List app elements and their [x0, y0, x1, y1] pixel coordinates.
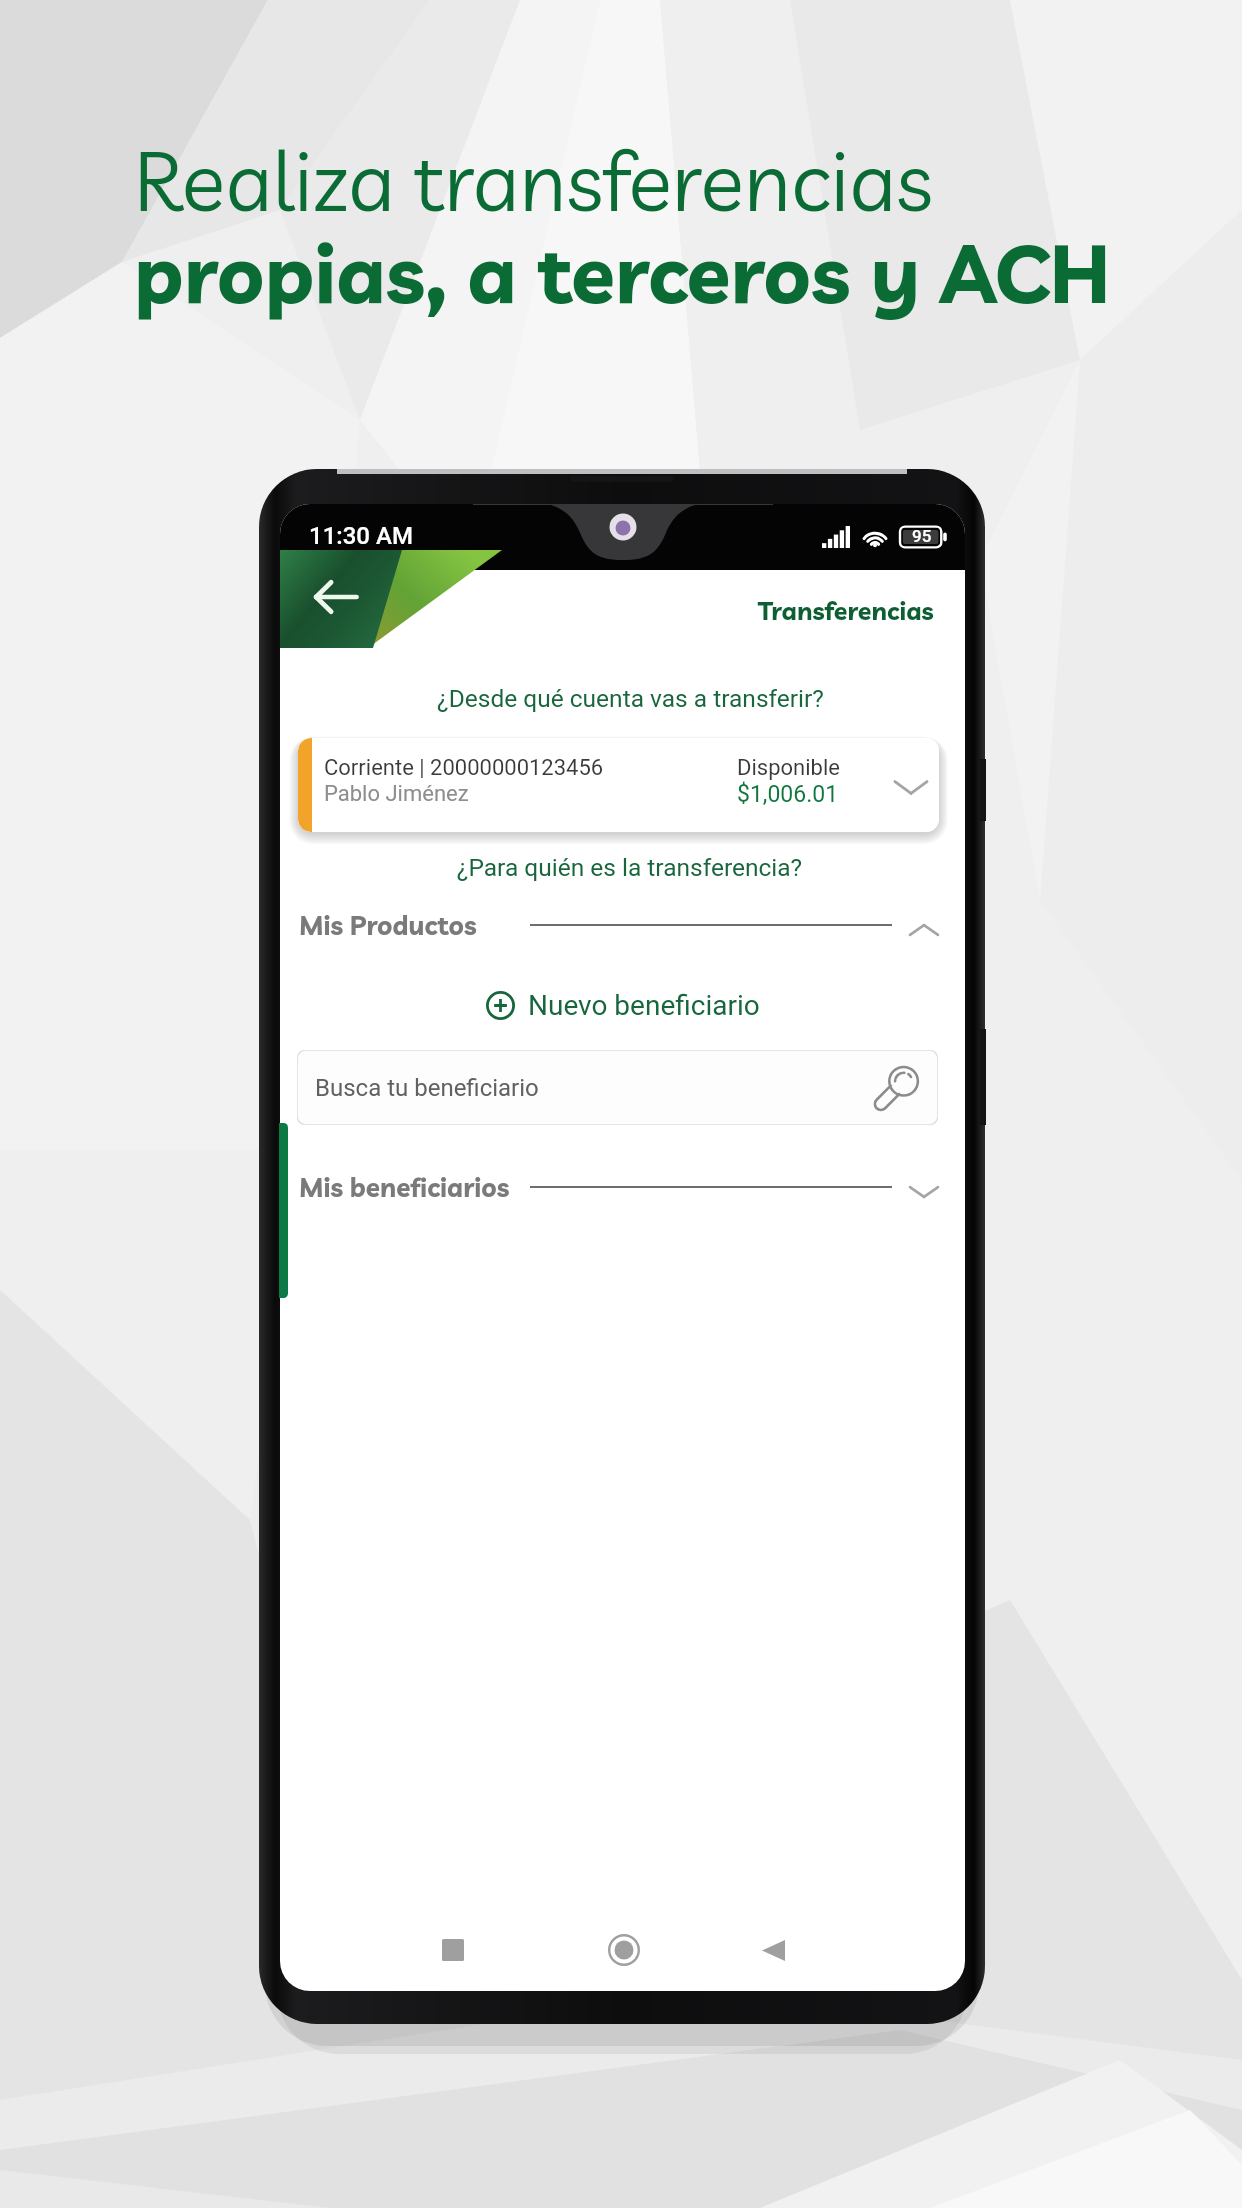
staticText: 11:30 AM	[309, 522, 413, 550]
button[interactable]: Mis Productos	[280, 899, 965, 951]
staticText: Transferencias	[758, 595, 934, 626]
staticText: Mis beneficiarios	[299, 1171, 510, 1204]
other: Search	[870, 1060, 926, 1116]
staticText: Disponible	[737, 755, 840, 781]
button[interactable]: Nuevo beneficiario	[280, 981, 965, 1029]
staticText: Busca tu beneficiario	[315, 1074, 539, 1102]
button[interactable]: Back	[742, 1919, 804, 1981]
staticText: Corriente | 20000000123456	[324, 755, 604, 781]
staticText: propias, a terceros y ACH	[134, 222, 1111, 323]
button[interactable]: Mis beneficiarios	[280, 1161, 965, 1213]
button[interactable]: Busca tu beneficiario	[297, 1050, 938, 1125]
button[interactable]: Home	[593, 1919, 655, 1981]
staticText: $1,006.01	[737, 781, 839, 808]
button[interactable]: Corriente | 20000000123456	[298, 738, 939, 832]
button[interactable]: Recent apps	[422, 1919, 484, 1981]
staticText: ¿Para quién es la transferencia?	[287, 853, 965, 882]
staticText: Pablo Jiménez	[324, 781, 469, 807]
staticText: Realiza transferencias	[134, 129, 934, 232]
staticText: Mis Productos	[299, 909, 477, 942]
staticText: ¿Desde qué cuenta vas a transferir?	[288, 684, 965, 713]
staticText: 95	[912, 526, 932, 546]
staticText: Nuevo beneficiario	[528, 989, 760, 1022]
button[interactable]: Back	[314, 582, 357, 612]
